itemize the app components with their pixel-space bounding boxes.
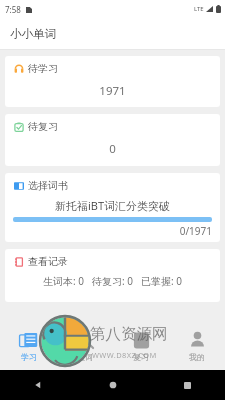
button[interactable]: 复习 bbox=[113, 324, 169, 370]
staticText: LTE bbox=[194, 5, 204, 13]
staticText: 7:58 bbox=[5, 4, 21, 15]
button[interactable]: 学习 bbox=[0, 324, 57, 370]
button[interactable]: Home bbox=[75, 370, 150, 400]
staticText: 生词本: 0 bbox=[43, 274, 84, 288]
staticText: 0 bbox=[5, 141, 220, 157]
button[interactable]: 查看记录 bbox=[5, 249, 220, 302]
staticText: 学习 bbox=[21, 352, 37, 362]
button[interactable]: 待学习 bbox=[5, 56, 220, 107]
staticText: 查词 bbox=[77, 352, 93, 362]
staticText: 选择词书 bbox=[28, 179, 68, 192]
button[interactable]: 待复习 bbox=[5, 114, 220, 166]
button[interactable]: 我的 bbox=[169, 324, 225, 370]
staticText: 待复习: 0 bbox=[92, 274, 133, 288]
staticText: 我的 bbox=[189, 352, 205, 362]
staticText: 已掌握: 0 bbox=[141, 274, 182, 288]
staticText: 复习 bbox=[133, 352, 149, 362]
staticText: 新托福iBT词汇分类突破 bbox=[5, 198, 220, 213]
staticText: 1971 bbox=[5, 83, 220, 99]
button[interactable]: 查词 bbox=[57, 324, 113, 370]
button[interactable]: Back bbox=[0, 370, 75, 400]
staticText: WWW.D8XZ.COM bbox=[92, 350, 157, 360]
staticText: 查看记录 bbox=[28, 255, 68, 268]
staticText: 小小单词 bbox=[10, 27, 56, 41]
staticText: 待学习 bbox=[28, 62, 58, 75]
button[interactable]: 选择词书 bbox=[5, 173, 220, 242]
staticText: 0/1971 bbox=[5, 224, 212, 238]
staticText: 待复习 bbox=[28, 120, 58, 133]
staticText: 第八资源网 bbox=[90, 324, 168, 344]
button[interactable]: Recent apps bbox=[150, 370, 225, 400]
